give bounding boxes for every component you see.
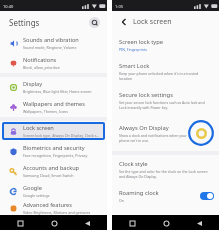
button[interactable]: Accounts and backup [0,161,107,181]
staticText: PIN, Fingerprints [119,47,147,52]
button[interactable]: Clock style [112,155,219,184]
staticText: Samsung Cloud, Smart Switch [23,173,74,178]
button[interactable]: Roaming clock toggle [200,192,214,200]
button[interactable]: Smart Lock [112,57,219,86]
button[interactable]: Biometrics and security [0,141,107,161]
button[interactable]: Secure lock settings [112,86,219,115]
staticText: Secure lock settings [119,91,173,99]
staticText: Wallpapers and themes [23,100,85,108]
button[interactable]: Google [0,181,107,201]
staticText: Sounds and vibration [23,36,79,44]
staticText: Screen lock type [119,38,164,46]
staticText: Roaming clock [119,189,159,197]
staticText: Wallpapers, Themes, Icons [23,109,69,114]
staticText: Always On Display [119,124,169,132]
button[interactable]: Always On Display [112,115,219,151]
staticText: Google settings [23,193,50,198]
staticText: Smart Lock [119,62,150,70]
staticText: On [119,198,124,203]
staticText: Brightness, Blue light filter, Home scre… [23,89,92,94]
button[interactable]: Always On Display toggle [188,120,214,146]
staticText: Lock screen [133,17,172,27]
staticText: Settings [9,17,40,28]
button[interactable]: Back [193,217,205,229]
button[interactable]: Recents [14,217,26,229]
staticText: Show a clock and notifications when your… [119,133,187,143]
staticText: Advanced features [23,201,72,209]
staticText: Screen lock type, Always On Display, Clo… [23,133,100,138]
button[interactable]: Sounds and vibration [0,33,107,53]
staticText: Clock style [119,160,148,168]
staticText: Set the type and color for the clock on … [119,169,208,179]
staticText: Biometrics and security [23,144,85,152]
staticText: Lock screen [23,124,54,132]
staticText: Sound mode, Ringtone, Volume [23,45,77,50]
staticText: Video Brightness, Motions and gestures [23,210,91,215]
staticText: Display [23,80,43,88]
staticText: Face recognition, Fingerprints, Privacy [23,153,88,158]
button[interactable]: Recents [126,217,138,229]
button[interactable]: Advanced features [0,201,107,215]
button[interactable]: Wallpapers and themes [0,97,107,117]
staticText: Keep your phone unlocked when it's in a … [119,71,212,81]
staticText: Notifications [23,56,57,64]
button[interactable]: Roaming clock [112,184,219,208]
button[interactable]: Notifications [0,53,107,73]
staticText: Accounts and backup [23,164,80,172]
button[interactable]: Search [89,17,100,28]
button[interactable]: Back [118,16,130,28]
staticText: Block, allow, prioritize [23,65,60,70]
button[interactable]: Back [81,217,93,229]
staticText: Set your secure lock functions such as A… [119,100,205,110]
button[interactable]: Home [48,217,60,229]
button[interactable]: Home [160,217,172,229]
staticText: Google [23,184,42,192]
button[interactable]: Lock screen [2,122,105,140]
staticText: 10:40 [3,4,14,9]
staticText: 1:05 [115,4,123,9]
button[interactable]: Display [0,77,107,97]
button[interactable]: Screen lock type [112,33,219,57]
